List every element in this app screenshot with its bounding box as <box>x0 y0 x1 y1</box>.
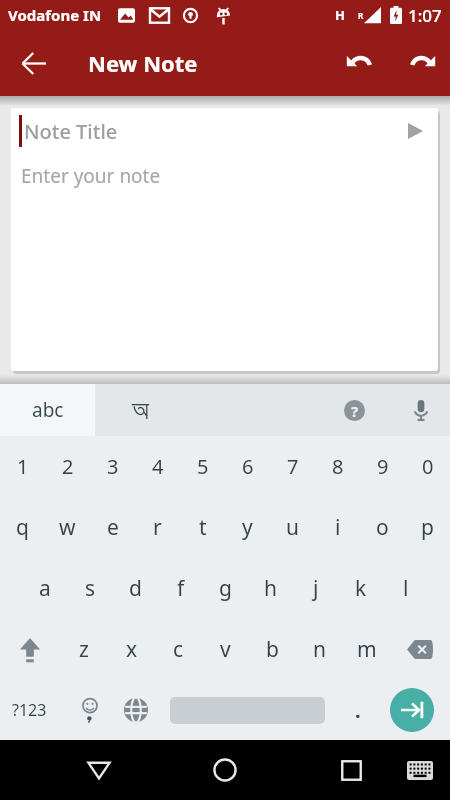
staticText: 1 <box>17 453 29 480</box>
staticText: ?123 <box>12 699 47 721</box>
button[interactable]: Note Title <box>24 118 408 145</box>
button[interactable] <box>400 41 444 85</box>
staticText: r <box>153 513 162 542</box>
button[interactable]: w <box>45 497 90 558</box>
button[interactable]: i <box>315 497 360 558</box>
staticText: R <box>358 10 364 21</box>
button[interactable]: অ <box>95 384 185 436</box>
staticText: 3 <box>107 453 119 480</box>
staticText: 0 <box>422 453 434 480</box>
button[interactable]: g <box>203 558 248 619</box>
button[interactable] <box>390 619 450 680</box>
button[interactable]: ? <box>332 384 376 436</box>
button[interactable]: e <box>90 497 135 558</box>
button[interactable] <box>408 123 424 139</box>
staticText: 5 <box>197 453 209 480</box>
staticText: t <box>199 513 207 542</box>
staticText: o <box>376 513 389 542</box>
button[interactable]: k <box>338 558 383 619</box>
staticText: u <box>286 513 299 542</box>
button[interactable]: v <box>202 619 249 680</box>
button[interactable]: r <box>135 497 180 558</box>
button[interactable]: 7 <box>270 436 315 497</box>
button[interactable]: 9 <box>360 436 405 497</box>
staticText: H <box>335 6 345 24</box>
button[interactable]: y <box>225 497 270 558</box>
button[interactable] <box>0 619 60 680</box>
button[interactable] <box>62 740 136 800</box>
button[interactable]: l <box>383 558 428 619</box>
staticText: 1:07 <box>408 4 442 27</box>
button[interactable]: c <box>155 619 202 680</box>
button[interactable]: 6 <box>225 436 270 497</box>
staticText: d <box>129 574 142 603</box>
staticText: অ <box>132 397 149 424</box>
button[interactable]: h <box>248 558 293 619</box>
staticText: ? <box>351 401 359 421</box>
staticText: f <box>177 574 185 603</box>
button[interactable]: o <box>360 497 405 558</box>
button[interactable]: z <box>60 619 108 680</box>
staticText: g <box>219 574 232 603</box>
staticText: n <box>313 635 326 664</box>
button[interactable] <box>392 384 450 436</box>
staticText: x <box>126 635 138 664</box>
button[interactable]: m <box>343 619 390 680</box>
button[interactable]: t <box>180 497 225 558</box>
button[interactable]: 5 <box>180 436 225 497</box>
button[interactable]: abc <box>0 384 95 436</box>
button[interactable] <box>58 680 122 740</box>
button[interactable]: Enter your note <box>21 163 161 189</box>
staticText: 4 <box>152 453 164 480</box>
button[interactable]: d <box>113 558 158 619</box>
staticText: k <box>355 574 367 603</box>
button[interactable]: 2 <box>45 436 90 497</box>
staticText: w <box>59 513 76 542</box>
button[interactable]: 4 <box>135 436 180 497</box>
button[interactable]: a <box>22 558 68 619</box>
staticText: l <box>403 574 409 603</box>
button[interactable] <box>392 742 448 798</box>
button[interactable] <box>188 740 262 800</box>
staticText: p <box>421 513 434 542</box>
button[interactable]: q <box>0 497 45 558</box>
staticText: b <box>266 635 279 664</box>
staticText: abc <box>32 397 64 423</box>
button[interactable] <box>6 35 62 91</box>
staticText: m <box>357 635 377 664</box>
button[interactable]: 8 <box>315 436 360 497</box>
button[interactable]: 0 <box>405 436 450 497</box>
staticText: a <box>39 574 51 603</box>
button[interactable]: p <box>405 497 450 558</box>
button[interactable]: ?123 <box>0 680 58 740</box>
button[interactable]: j <box>293 558 338 619</box>
button[interactable] <box>390 688 434 732</box>
staticText: z <box>79 635 89 664</box>
staticText: 7 <box>287 453 299 480</box>
staticText: h <box>264 574 277 603</box>
staticText: j <box>313 574 319 603</box>
staticText: e <box>107 513 119 542</box>
button[interactable]: s <box>68 558 113 619</box>
button[interactable]: . <box>325 680 390 740</box>
button[interactable]: u <box>270 497 315 558</box>
staticText: 6 <box>242 453 254 480</box>
staticText: 9 <box>377 453 389 480</box>
button[interactable]: b <box>249 619 296 680</box>
button[interactable] <box>338 41 382 85</box>
button[interactable]: 3 <box>90 436 135 497</box>
button[interactable] <box>314 740 388 800</box>
staticText: 2 <box>62 453 74 480</box>
button[interactable]: 1 <box>0 436 45 497</box>
button[interactable]: n <box>296 619 343 680</box>
staticText: s <box>85 574 96 603</box>
staticText: v <box>220 635 231 664</box>
button[interactable]: f <box>158 558 203 619</box>
button[interactable] <box>122 680 150 740</box>
staticText: c <box>173 635 184 664</box>
button[interactable]: x <box>108 619 155 680</box>
staticText: i <box>335 513 341 542</box>
staticText: q <box>16 513 29 542</box>
staticText: Vodafone IN <box>8 5 102 25</box>
